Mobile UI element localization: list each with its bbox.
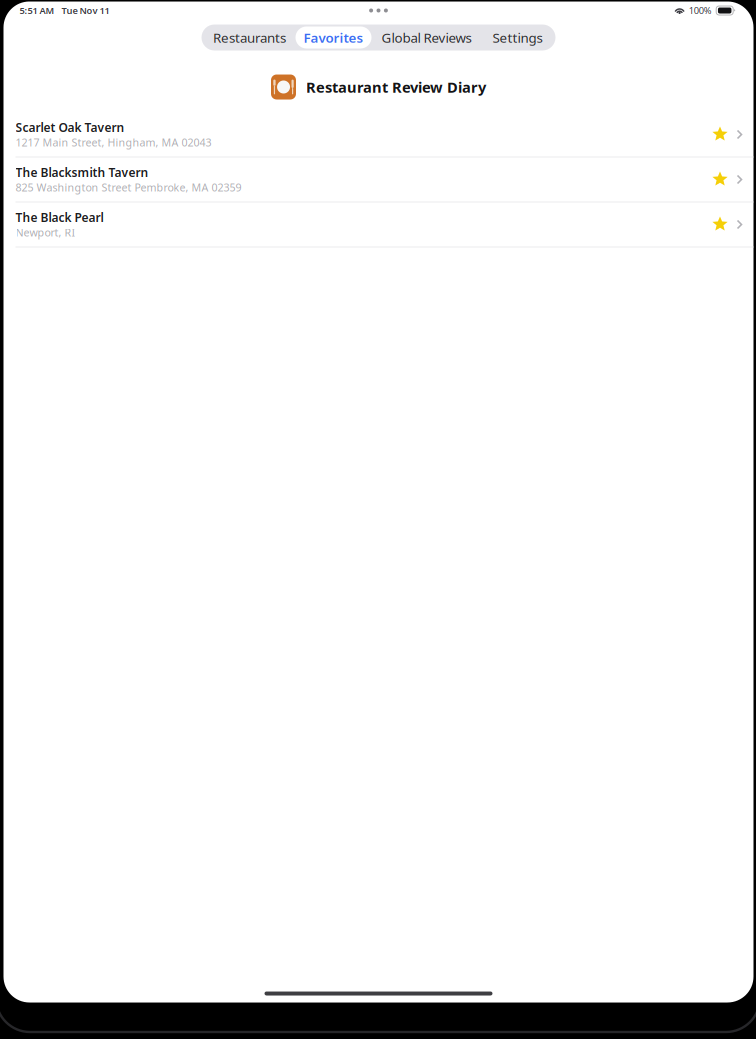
button[interactable]: The Black Pearl <box>3 202 753 247</box>
staticText: 1217 Main Street, Hingham, MA 02043 <box>15 135 211 150</box>
staticText: Favorites <box>303 29 363 46</box>
staticText: 825 Washington Street Pembroke, MA 02359 <box>15 180 241 195</box>
button[interactable]: Scarlet Oak Tavern <box>3 112 753 157</box>
button[interactable]: Favorites <box>295 26 371 48</box>
button[interactable]: Restaurants <box>203 26 295 48</box>
button[interactable]: Global Reviews <box>371 26 481 48</box>
staticText: Newport, RI <box>15 225 75 240</box>
staticText: Restaurant Review Diary <box>306 77 486 97</box>
staticText: The Black Pearl <box>15 209 103 225</box>
staticText: Tue Nov 11 <box>61 4 109 17</box>
button[interactable]: Settings <box>481 26 553 48</box>
staticText: 5:51 AM <box>19 4 54 17</box>
staticText: Scarlet Oak Tavern <box>15 119 124 135</box>
button[interactable]: Multitasking controls <box>358 1 398 19</box>
staticText: The Blacksmith Tavern <box>15 164 148 180</box>
staticText: 100% <box>689 4 712 17</box>
staticText: Global Reviews <box>381 29 471 46</box>
button[interactable]: The Blacksmith Tavern <box>3 157 753 202</box>
staticText: Settings <box>492 29 542 46</box>
staticText: Restaurants <box>213 29 286 46</box>
